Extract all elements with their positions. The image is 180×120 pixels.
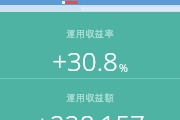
staticText: 運用収益額 xyxy=(66,92,114,103)
button[interactable]: 運用収益率 xyxy=(0,12,180,78)
staticText: +228,157 xyxy=(35,106,145,120)
staticText: 運用収益率 xyxy=(66,28,114,39)
staticText: % xyxy=(119,60,128,75)
button[interactable]: 運用収益額 xyxy=(0,79,180,120)
staticText: +30.8 xyxy=(52,43,118,78)
other: Status indicator xyxy=(64,1,78,4)
